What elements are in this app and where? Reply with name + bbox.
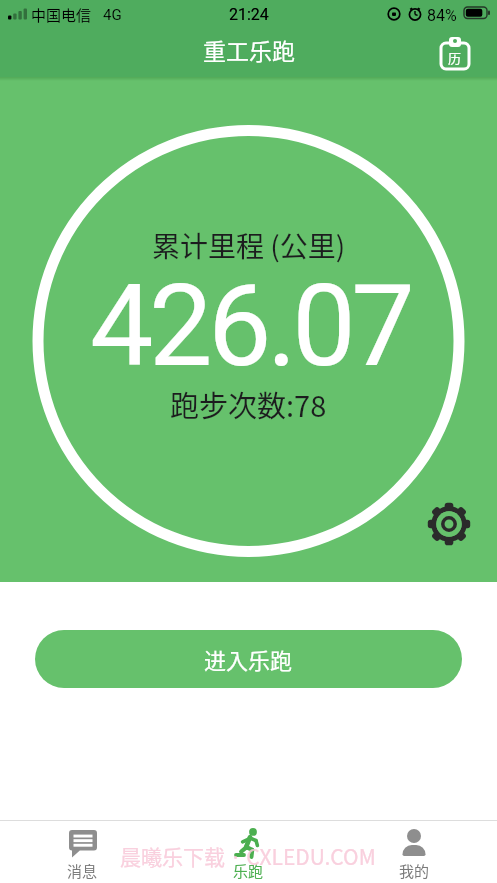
staticText: 4G (103, 6, 122, 24)
staticText: 历 (448, 48, 462, 67)
staticText: 426.07 (90, 260, 411, 392)
staticText: 跑步次数:78 (170, 383, 327, 425)
staticText: 进入乐跑 (204, 643, 293, 675)
staticText: 重工乐跑 (203, 33, 295, 66)
button[interactable] (427, 502, 471, 546)
button[interactable]: 进入乐跑 (35, 630, 462, 688)
staticText: 消息 (67, 860, 98, 882)
button[interactable]: 历 (438, 36, 472, 70)
staticText: 21:24 (229, 5, 269, 24)
staticText: 累计里程 (公里) (152, 225, 346, 266)
button[interactable]: 消息 (0, 820, 165, 883)
staticText: 中国电信 (31, 4, 92, 26)
staticText: 晨曦乐下载 · CXLEDU.COM (120, 841, 376, 871)
button[interactable]: 乐跑 (165, 820, 331, 883)
button[interactable]: 我的 (331, 820, 497, 883)
staticText: 我的 (399, 860, 430, 882)
staticText: 21:24 (229, 5, 269, 24)
staticText: 乐跑 (233, 860, 264, 882)
staticText: 84% (427, 6, 457, 25)
